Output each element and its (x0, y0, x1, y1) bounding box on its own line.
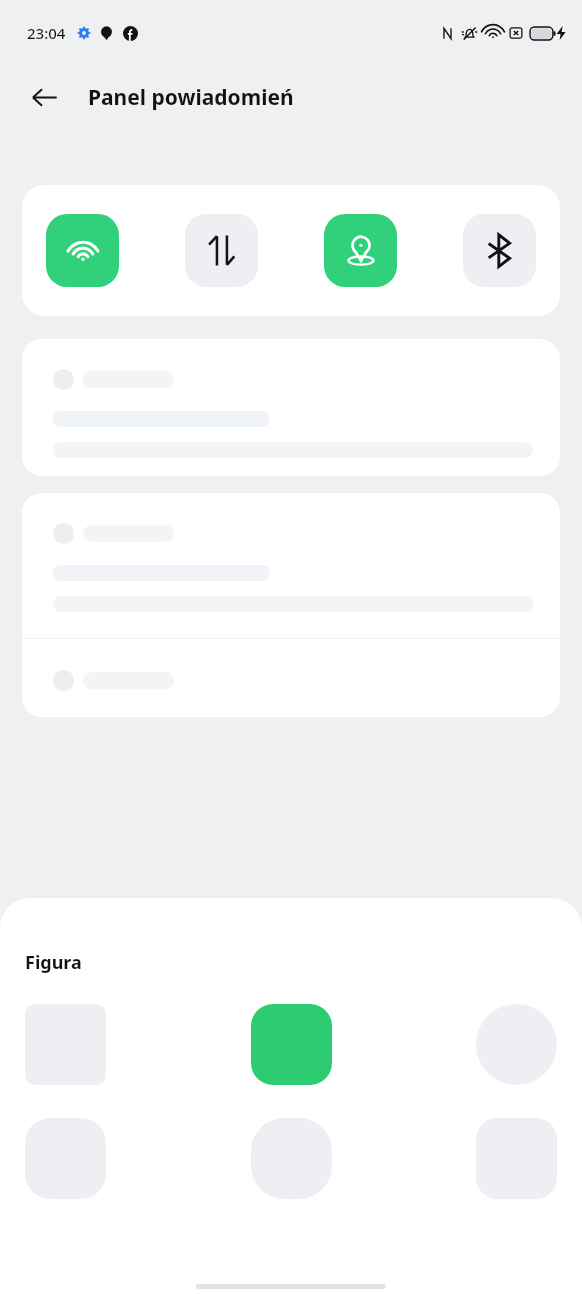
button[interactable]: Bluetooth (463, 214, 536, 287)
button[interactable]: Wi-Fi (46, 214, 119, 287)
button[interactable]: Shape rounded selected (251, 1004, 332, 1085)
button[interactable]: Shape squircle (251, 1118, 332, 1199)
button[interactable] (22, 339, 560, 476)
button[interactable]: Shape rounded A (25, 1118, 106, 1199)
button[interactable]: Shape circle (476, 1004, 557, 1085)
button[interactable]: Location (324, 214, 397, 287)
staticText: 23:04 (27, 23, 66, 43)
staticText: Figura (25, 950, 82, 975)
button[interactable]: Shape rounded B (476, 1118, 557, 1199)
button[interactable] (22, 493, 560, 638)
button[interactable]: Mobile data (185, 214, 258, 287)
staticText: Panel powiadomień (88, 83, 294, 112)
button[interactable]: Back (20, 73, 68, 121)
